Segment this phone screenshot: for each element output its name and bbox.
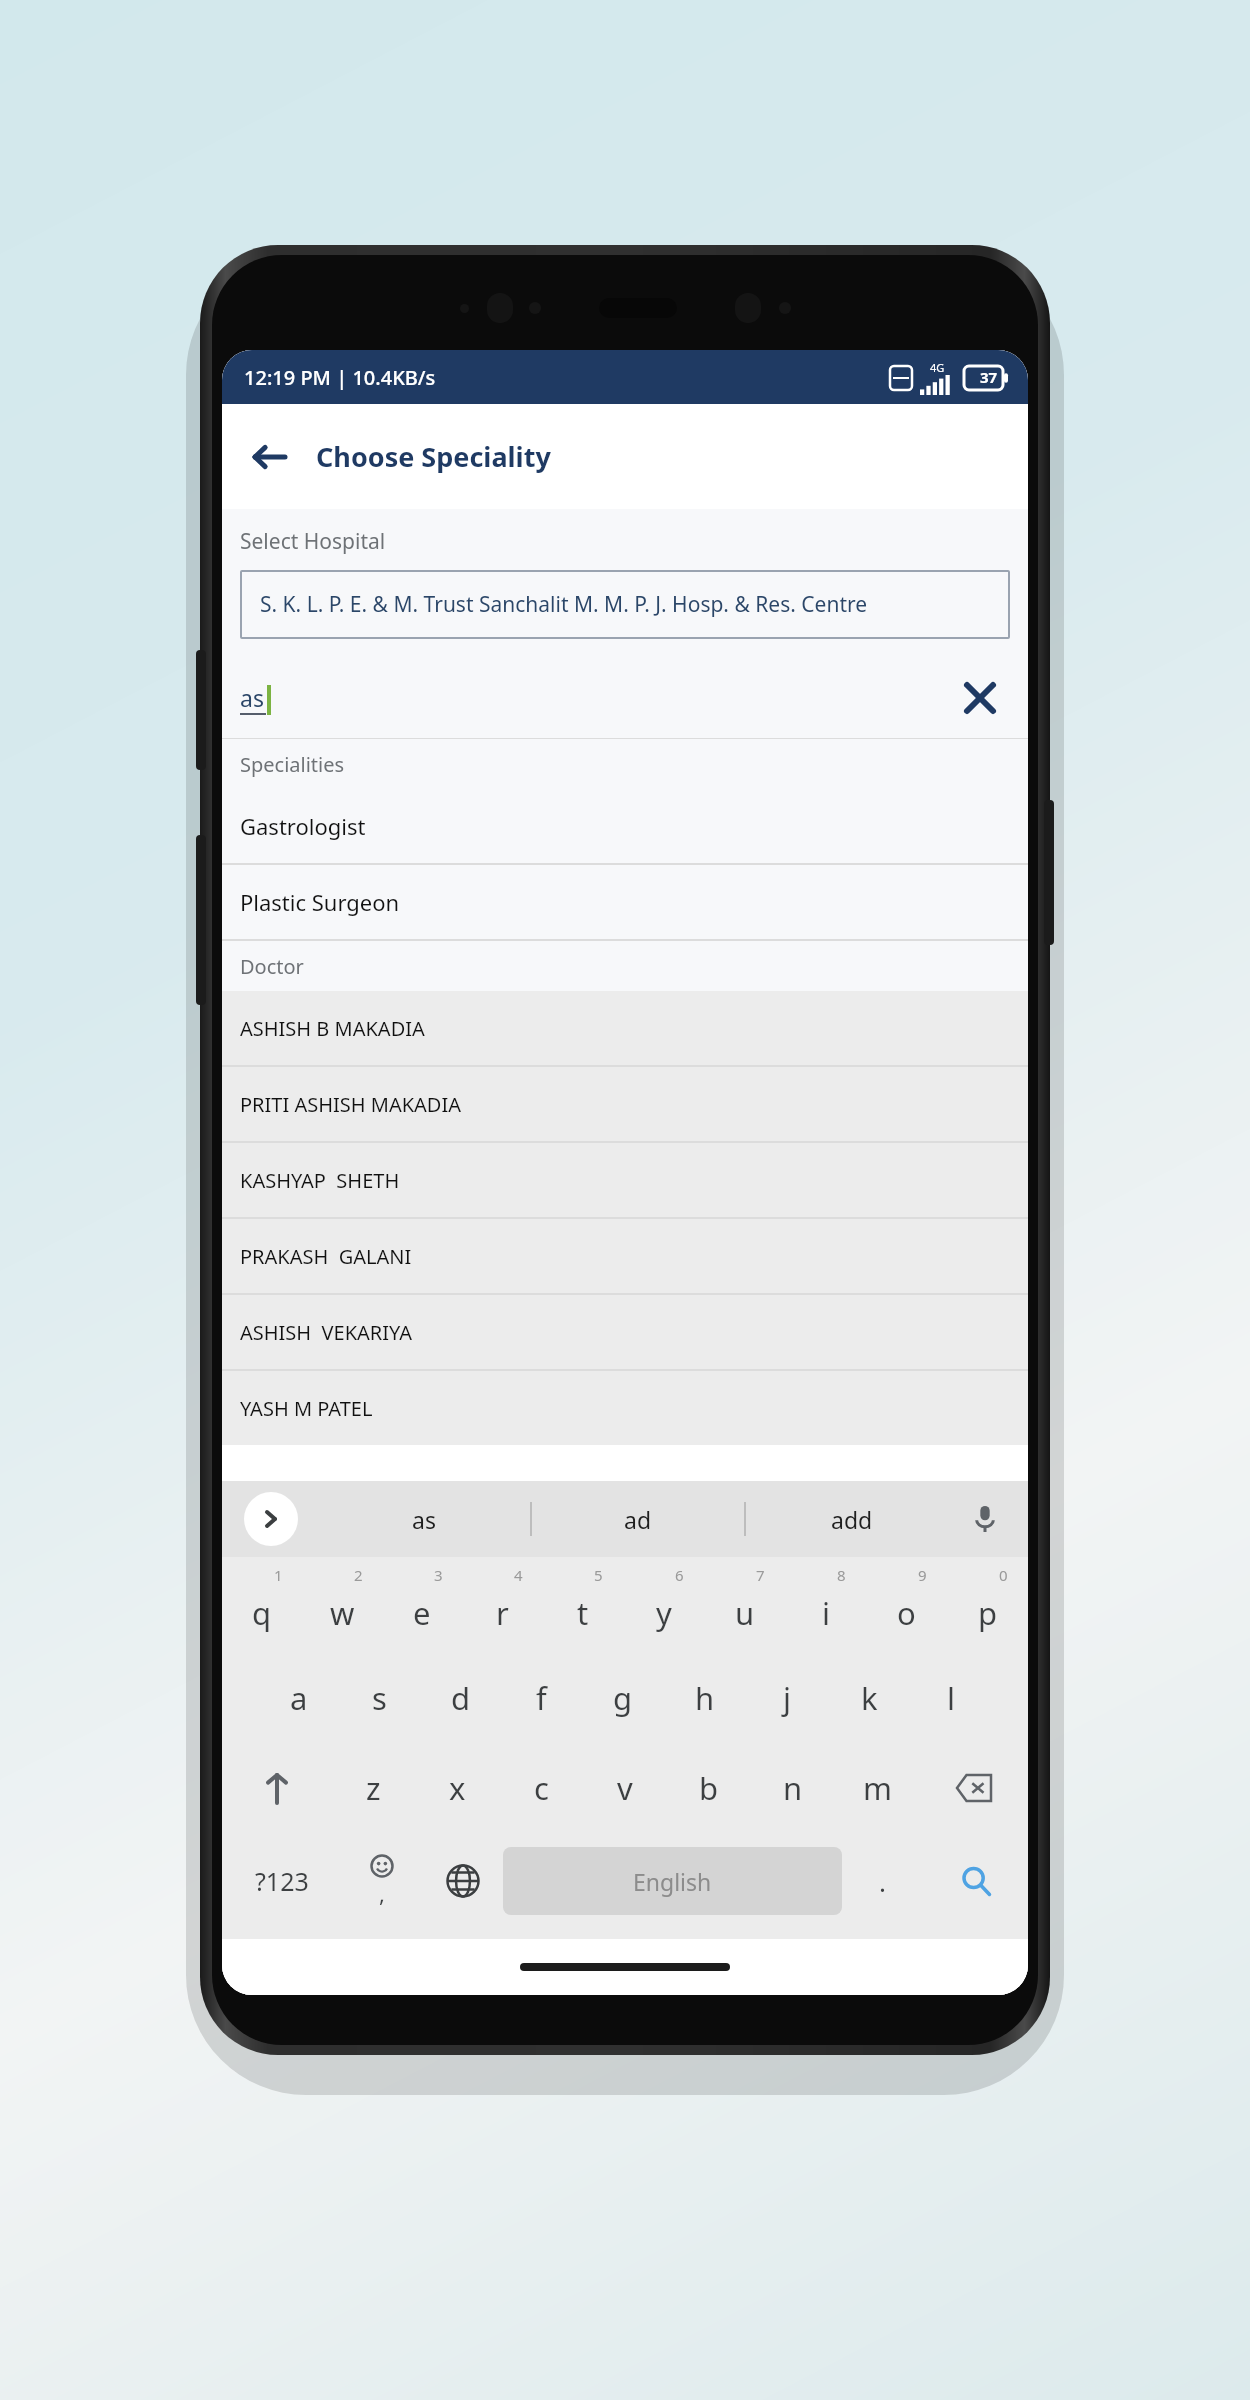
button[interactable]: 1 — [222, 1557, 302, 1653]
staticText: y — [656, 1592, 672, 1634]
staticText: u — [735, 1592, 755, 1634]
staticText: YASH M PATEL — [240, 1395, 373, 1422]
staticText: Doctor — [240, 953, 1028, 980]
staticText: ?123 — [255, 1864, 309, 1898]
button[interactable]: 5 — [542, 1557, 623, 1653]
button[interactable]: ASHISH B MAKADIA — [222, 991, 1028, 1065]
staticText: b — [699, 1767, 719, 1809]
button[interactable]: 0 — [947, 1557, 1028, 1653]
staticText: 3 — [434, 1565, 443, 1585]
button[interactable]: ad — [532, 1481, 744, 1557]
staticText: j — [783, 1677, 791, 1719]
button[interactable]: l — [910, 1653, 992, 1743]
button[interactable]: Voice input — [960, 1494, 1010, 1544]
staticText: ASHISH B MAKADIA — [240, 1015, 425, 1042]
staticText: v — [617, 1767, 633, 1809]
staticText: s — [372, 1677, 387, 1719]
button[interactable]: 2 — [302, 1557, 382, 1653]
staticText: . — [879, 1864, 886, 1899]
button[interactable]: ?123 — [222, 1833, 342, 1929]
staticText: 7 — [756, 1565, 765, 1585]
staticText: ad — [624, 1504, 652, 1535]
button[interactable]: j — [746, 1653, 828, 1743]
button[interactable]: Clear — [952, 670, 1008, 726]
button[interactable]: a — [258, 1653, 339, 1743]
staticText: 1 — [274, 1565, 283, 1585]
staticText: PRITI ASHISH MAKADIA — [240, 1091, 462, 1118]
button[interactable]: 8 — [785, 1557, 866, 1653]
staticText: S. K. L. P. E. & M. Trust Sanchalit M. M… — [260, 590, 868, 619]
staticText: 6 — [675, 1565, 684, 1585]
button[interactable]: m — [835, 1743, 919, 1833]
staticText: 2 — [354, 1565, 363, 1585]
button[interactable]: b — [667, 1743, 751, 1833]
staticText: Choose Speciality — [316, 438, 551, 475]
button[interactable]: 6 — [623, 1557, 704, 1653]
button[interactable]: PRAKASH GALANI — [222, 1219, 1028, 1293]
button[interactable]: Search — [923, 1833, 1028, 1929]
staticText: e — [413, 1592, 431, 1634]
button[interactable]: h — [664, 1653, 746, 1743]
staticText: 9 — [918, 1565, 927, 1585]
button[interactable]: s — [339, 1653, 420, 1743]
staticText: 12:19 PM | 10.4KB/s — [244, 364, 436, 391]
button[interactable]: . — [842, 1833, 923, 1929]
button[interactable]: Change language — [422, 1833, 503, 1929]
button[interactable]: Back — [240, 428, 298, 486]
button[interactable]: Emoji — [342, 1833, 422, 1929]
staticText: 8 — [837, 1565, 846, 1585]
button[interactable]: KASHYAP SHETH — [222, 1143, 1028, 1217]
staticText: z — [366, 1767, 381, 1809]
button[interactable]: English — [503, 1847, 842, 1915]
staticText: 4G — [930, 360, 945, 375]
staticText: Specialities — [240, 751, 1028, 778]
button[interactable]: v — [583, 1743, 667, 1833]
staticText: c — [534, 1767, 549, 1809]
staticText: 37 — [980, 367, 998, 387]
button[interactable]: 9 — [866, 1557, 947, 1653]
staticText: 5 — [594, 1565, 603, 1585]
staticText: d — [451, 1677, 471, 1719]
button[interactable]: PRITI ASHISH MAKADIA — [222, 1067, 1028, 1141]
button[interactable]: Shift — [222, 1743, 331, 1833]
staticText: w — [330, 1592, 355, 1634]
staticText: p — [978, 1592, 998, 1634]
button[interactable]: ASHISH VEKARIYA — [222, 1295, 1028, 1369]
staticText: n — [783, 1767, 803, 1809]
staticText: g — [613, 1677, 633, 1719]
staticText: Gastrologist — [240, 811, 366, 841]
staticText: h — [695, 1677, 715, 1719]
button[interactable]: z — [331, 1743, 415, 1833]
staticText: as — [240, 682, 264, 713]
button[interactable]: Gastrologist — [222, 789, 1028, 863]
button[interactable]: 3 — [382, 1557, 462, 1653]
button[interactable]: 4 — [462, 1557, 542, 1653]
button[interactable]: Backspace — [919, 1743, 1028, 1833]
staticText: o — [897, 1592, 916, 1634]
button[interactable]: 7 — [704, 1557, 785, 1653]
staticText: f — [536, 1677, 547, 1719]
button[interactable]: YASH M PATEL — [222, 1371, 1028, 1445]
button[interactable]: S. K. L. P. E. & M. Trust Sanchalit M. M… — [240, 570, 1010, 639]
button[interactable]: d — [420, 1653, 501, 1743]
button[interactable]: n — [751, 1743, 835, 1833]
staticText: , — [379, 1878, 385, 1908]
button[interactable]: More suggestions — [244, 1492, 298, 1546]
button[interactable]: f — [501, 1653, 582, 1743]
staticText: i — [822, 1592, 830, 1634]
staticText: a — [290, 1677, 308, 1719]
staticText: q — [252, 1592, 272, 1634]
button[interactable]: c — [499, 1743, 583, 1833]
staticText: KASHYAP SHETH — [240, 1167, 400, 1194]
button[interactable]: Plastic Surgeon — [222, 865, 1028, 939]
button[interactable]: as — [318, 1481, 530, 1557]
button[interactable]: add — [746, 1481, 958, 1557]
staticText: Plastic Surgeon — [240, 887, 400, 917]
staticText: m — [863, 1767, 892, 1809]
staticText: ASHISH VEKARIYA — [240, 1319, 412, 1346]
staticText: add — [831, 1504, 873, 1535]
button[interactable]: k — [828, 1653, 910, 1743]
button[interactable]: g — [582, 1653, 664, 1743]
staticText: 4 — [514, 1565, 523, 1585]
button[interactable]: x — [415, 1743, 499, 1833]
